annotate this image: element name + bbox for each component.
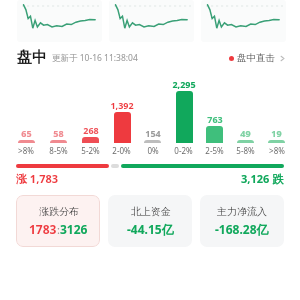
staticText: 北上资金 [131,205,171,218]
staticText: -168.28亿 [215,221,269,237]
staticText: 涨跌分布 [39,205,79,218]
staticText: 65 [21,127,32,139]
button[interactable]: 盘中直击 [229,52,286,64]
button[interactable]: 北上资金 [108,195,192,247]
staticText: 763 [207,113,223,125]
staticText: 盘中直击 [237,52,275,64]
staticText: 2,295 [172,78,196,90]
staticText: : [57,222,60,237]
staticText: 5-2% [81,145,100,156]
button[interactable]: 涨跌分布 [16,195,100,247]
staticText: 3,126 跌 [241,171,284,186]
button[interactable]: 主力净流入 [200,195,284,247]
staticText: 8-5% [49,145,68,156]
staticText: -44.15亿 [127,221,174,237]
staticText: 3126 [60,221,88,237]
staticText: >8% [269,145,285,156]
staticText: 5-8% [236,145,255,156]
staticText: 1783 [29,221,57,237]
staticText: >8% [18,145,34,156]
staticText: 49 [240,127,251,139]
staticText: 154 [145,127,161,139]
staticText: 2-5% [205,145,224,156]
button[interactable]: Index chart 2 [109,0,194,42]
staticText: 19 [271,127,282,139]
staticText: 更新于 10-16 11:38:04 [52,52,138,64]
staticText: 268 [83,124,99,136]
staticText: 0% [147,145,159,156]
staticText: 0-2% [174,145,193,156]
staticText: 2-0% [112,145,131,156]
staticText: 盘中 [17,48,47,67]
staticText: 涨 1,783 [16,171,59,186]
staticText: 1,392 [110,99,134,111]
button[interactable]: Index chart 3 [201,0,286,42]
button[interactable]: Index chart 1 [17,0,102,42]
staticText: 主力净流入 [217,205,267,218]
staticText: 58 [53,127,64,139]
